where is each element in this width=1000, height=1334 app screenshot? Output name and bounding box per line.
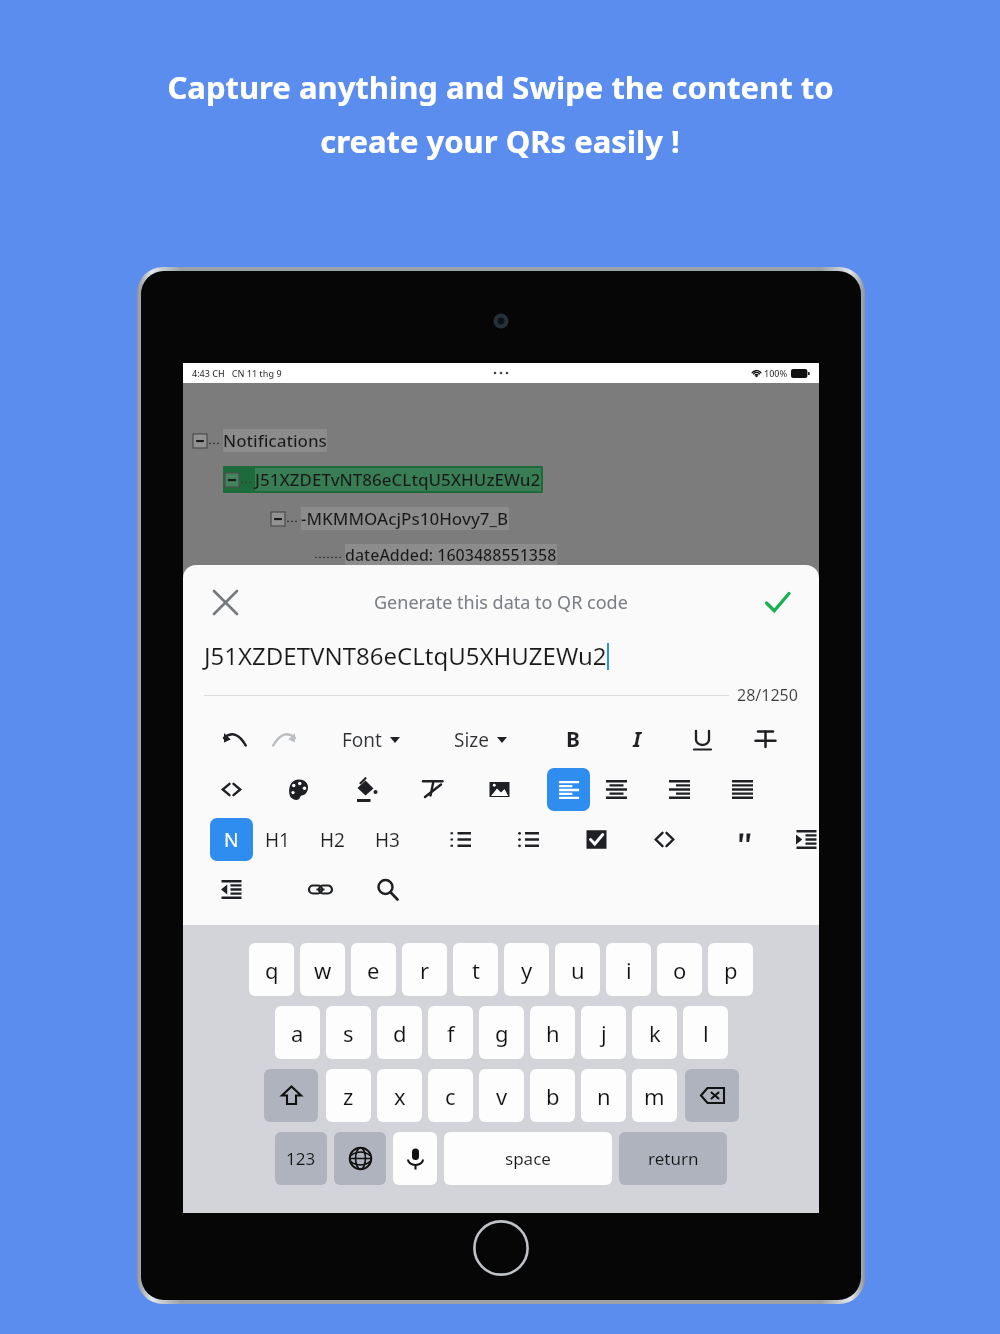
- staticText: B: [566, 725, 580, 754]
- button[interactable]: Align right: [658, 768, 701, 811]
- button[interactable]: return: [619, 1132, 727, 1185]
- staticText: J51XZDETVNT86eCLtqU5XHUZEWu2: [204, 639, 607, 672]
- button[interactable]: Code: [210, 768, 253, 811]
- button[interactable]: k: [632, 1006, 677, 1059]
- button[interactable]: Undo: [213, 718, 256, 761]
- button[interactable]: Indent: [793, 818, 819, 861]
- staticText: -MKMMOAcjPs10Hovy7_B: [301, 507, 509, 530]
- button[interactable]: w: [300, 943, 345, 996]
- staticText: dateAdded: 1603488551358: [345, 544, 557, 566]
- button[interactable]: Quote: [724, 818, 767, 861]
- button[interactable]: q: [249, 943, 294, 996]
- button[interactable]: Text color: [277, 768, 320, 811]
- staticText: y: [521, 955, 533, 985]
- button[interactable]: Insert image: [478, 768, 521, 811]
- button[interactable]: Backspace: [685, 1069, 739, 1122]
- button[interactable]: H2: [317, 818, 348, 861]
- button[interactable]: Numbered list: [439, 818, 482, 861]
- button[interactable]: t: [453, 943, 498, 996]
- staticText: Generate this data to QR code: [374, 590, 628, 615]
- button[interactable]: Confirm: [755, 580, 799, 624]
- button[interactable]: Align left: [547, 768, 590, 811]
- staticText: b: [546, 1081, 560, 1111]
- button[interactable]: Checklist: [575, 818, 618, 861]
- staticText: u: [571, 955, 585, 985]
- button[interactable]: Font: [338, 718, 404, 761]
- button[interactable]: Bulleted list: [507, 818, 550, 861]
- button[interactable]: Align center: [595, 768, 638, 811]
- button[interactable]: Justify: [721, 768, 764, 811]
- button[interactable]: y: [504, 943, 549, 996]
- button[interactable]: H1: [262, 818, 293, 861]
- staticText: s: [343, 1018, 354, 1048]
- button[interactable]: Underline: [681, 718, 724, 761]
- staticText: Font: [342, 727, 382, 753]
- button[interactable]: Shift: [264, 1069, 318, 1122]
- button[interactable]: Clear formatting: [411, 768, 454, 811]
- button[interactable]: N: [210, 818, 253, 861]
- button[interactable]: b: [530, 1069, 575, 1122]
- staticText: H3: [375, 827, 400, 853]
- button[interactable]: B: [551, 718, 594, 761]
- staticText: create your QRs easily !: [320, 120, 680, 162]
- button[interactable]: Search: [366, 868, 409, 911]
- button[interactable]: s: [326, 1006, 371, 1059]
- button[interactable]: i: [606, 943, 651, 996]
- button[interactable]: Size: [450, 718, 511, 761]
- button[interactable]: p: [708, 943, 753, 996]
- button[interactable]: m: [632, 1069, 677, 1122]
- button[interactable]: Voice input: [393, 1132, 437, 1185]
- staticText: z: [343, 1081, 354, 1111]
- staticText: 4:43 CH CN 11 thg 9: [192, 367, 282, 379]
- staticText: return: [648, 1147, 699, 1170]
- button[interactable]: Insert link: [299, 868, 342, 911]
- staticText: n: [597, 1081, 611, 1111]
- staticText: Capture anything and Swipe the content t…: [167, 66, 834, 108]
- button[interactable]: o: [657, 943, 702, 996]
- button[interactable]: I: [616, 718, 659, 761]
- button[interactable]: Outdent: [210, 868, 253, 911]
- button[interactable]: H3: [372, 818, 403, 861]
- staticText: 123: [286, 1147, 316, 1170]
- button[interactable]: v: [479, 1069, 524, 1122]
- button[interactable]: l: [683, 1006, 728, 1059]
- staticText: 100%: [764, 367, 788, 379]
- staticText: H1: [265, 827, 290, 853]
- button[interactable]: 123: [275, 1132, 327, 1185]
- button[interactable]: Close: [203, 580, 247, 624]
- staticText: v: [496, 1081, 508, 1111]
- staticText: g: [495, 1018, 509, 1048]
- staticText: p: [724, 955, 738, 985]
- staticText: space: [505, 1147, 551, 1170]
- staticText: J51XZDETvNT86eCLtqU5XHUzEWu2: [255, 468, 541, 491]
- button[interactable]: z: [326, 1069, 371, 1122]
- button[interactable]: f: [428, 1006, 473, 1059]
- button[interactable]: h: [530, 1006, 575, 1059]
- staticText: t: [472, 955, 480, 985]
- staticText: 28/1250: [737, 684, 798, 706]
- staticText: f: [447, 1018, 455, 1048]
- button[interactable]: n: [581, 1069, 626, 1122]
- button[interactable]: u: [555, 943, 600, 996]
- staticText: j: [601, 1018, 607, 1048]
- button[interactable]: Fill color: [344, 768, 387, 811]
- button[interactable]: j: [581, 1006, 626, 1059]
- staticText: c: [445, 1081, 456, 1111]
- button[interactable]: r: [402, 943, 447, 996]
- button[interactable]: Change keyboard: [334, 1132, 386, 1185]
- staticText: m: [644, 1081, 665, 1111]
- button[interactable]: Code block: [643, 818, 686, 861]
- button[interactable]: Redo: [263, 718, 306, 761]
- staticText: h: [546, 1018, 560, 1048]
- button[interactable]: d: [377, 1006, 422, 1059]
- button[interactable]: a: [275, 1006, 320, 1059]
- button[interactable]: x: [377, 1069, 422, 1122]
- button[interactable]: c: [428, 1069, 473, 1122]
- button[interactable]: g: [479, 1006, 524, 1059]
- button[interactable]: Strikethrough: [744, 718, 787, 761]
- staticText: d: [393, 1018, 407, 1048]
- button[interactable]: space: [444, 1132, 612, 1185]
- staticText: H2: [320, 827, 345, 853]
- button[interactable]: e: [351, 943, 396, 996]
- staticText: w: [314, 955, 332, 985]
